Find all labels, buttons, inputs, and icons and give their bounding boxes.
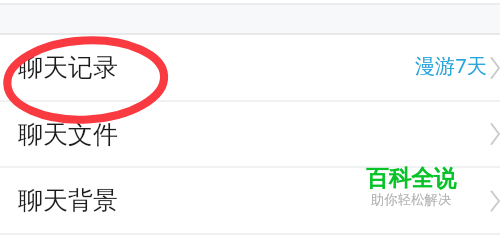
button[interactable]: 聊天文件 [0, 102, 500, 166]
staticText: 聊天文件 [18, 119, 118, 150]
staticText: 聊天背景 [18, 185, 118, 216]
other: Open [490, 122, 500, 146]
button[interactable]: 聊天背景 [0, 168, 500, 233]
other: Open [490, 189, 500, 213]
staticText: 漫游7天 [415, 52, 487, 79]
staticText: 百科全说 [366, 164, 457, 192]
button[interactable]: 聊天记录 [0, 35, 500, 100]
other: Open [490, 56, 500, 80]
staticText: 助你轻松解决 [371, 191, 452, 208]
staticText: 聊天记录 [18, 52, 118, 83]
